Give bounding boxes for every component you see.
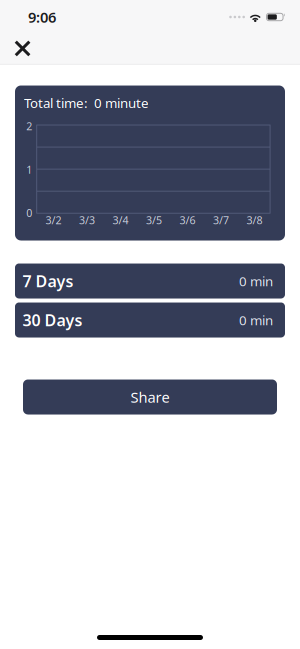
staticText: 3/7 [213,213,229,227]
staticText: 3/5 [146,213,162,227]
staticText: 3/4 [112,213,128,227]
staticText: 3/6 [179,213,195,227]
staticText: Total time: 0 minute [24,94,149,112]
staticText: 0 [26,206,32,220]
staticText: 0 min [239,272,273,290]
button[interactable]: 7 Days [15,263,285,298]
staticText: 3/8 [246,213,262,227]
staticText: 0 min [239,311,273,329]
button[interactable]: Close [0,34,44,64]
staticText: 30 Days [22,309,82,331]
staticText: 3/2 [45,213,61,227]
staticText: 1 [26,163,32,177]
staticText: 3/3 [79,213,95,227]
button[interactable]: Share [23,379,277,414]
button[interactable]: 30 Days [15,302,285,337]
staticText: 7 Days [22,270,73,292]
staticText: Share [130,387,169,407]
staticText: 2 [26,119,32,133]
staticText: 9:06 [28,7,56,27]
